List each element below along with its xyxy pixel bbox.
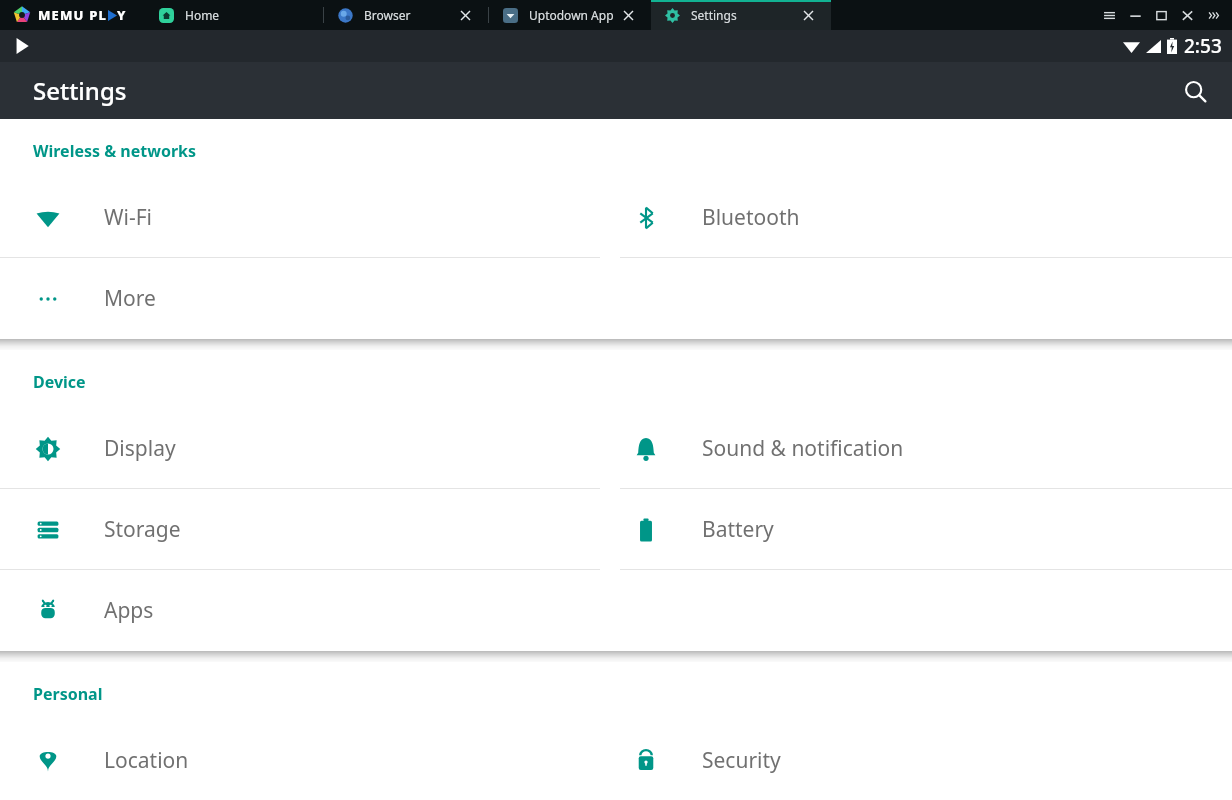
button[interactable]: Menu xyxy=(1096,0,1122,30)
button[interactable]: Settings xyxy=(651,0,831,30)
button[interactable]: Storage xyxy=(0,489,600,570)
staticText: Sound & notification xyxy=(702,434,904,463)
staticText: Location xyxy=(104,746,189,775)
staticText: Apps xyxy=(104,596,154,625)
staticText: Security xyxy=(702,746,781,775)
staticText: Device xyxy=(33,371,86,393)
staticText: More xyxy=(104,284,156,313)
button[interactable]: Security xyxy=(620,720,1232,800)
button[interactable]: More xyxy=(1200,0,1226,30)
button[interactable]: Close xyxy=(1174,0,1200,30)
staticText: Bluetooth xyxy=(702,203,800,232)
staticText: Browser xyxy=(364,7,454,23)
staticText: Y xyxy=(117,6,127,24)
button[interactable]: Bluetooth xyxy=(620,177,1232,258)
button[interactable]: MEMU PL xyxy=(0,0,145,30)
button[interactable]: Apps xyxy=(0,570,600,651)
button[interactable]: Sound & notification xyxy=(620,408,1232,489)
button[interactable]: Play xyxy=(12,36,32,56)
button[interactable]: Home xyxy=(145,0,323,30)
button[interactable]: Close tab xyxy=(797,4,819,26)
button[interactable]: Close tab xyxy=(617,4,639,26)
button[interactable]: Location xyxy=(0,720,600,800)
button[interactable]: Search xyxy=(1172,68,1218,114)
button[interactable]: Maximize xyxy=(1148,0,1174,30)
button[interactable]: Uptodown App Store xyxy=(489,0,651,30)
button[interactable]: Close tab xyxy=(454,4,476,26)
staticText: Wireless & networks xyxy=(33,140,197,162)
staticText: MEMU PL xyxy=(38,6,108,24)
staticText: Display xyxy=(104,434,176,463)
staticText: Home xyxy=(185,7,289,23)
button[interactable]: Display xyxy=(0,408,600,489)
button[interactable]: Wi-Fi xyxy=(0,177,600,258)
staticText: Personal xyxy=(33,683,103,705)
staticText: Wi-Fi xyxy=(104,203,153,232)
staticText: Settings xyxy=(691,7,797,23)
staticText: Battery xyxy=(702,515,774,544)
staticText: Storage xyxy=(104,515,181,544)
staticText: Uptodown App Store xyxy=(529,7,617,23)
staticText: Settings xyxy=(33,74,127,107)
button[interactable]: More xyxy=(0,258,600,339)
button[interactable]: Browser xyxy=(324,0,488,30)
button[interactable]: Minimize xyxy=(1122,0,1148,30)
staticText: 2:53 xyxy=(1184,33,1222,59)
button[interactable]: Battery xyxy=(620,489,1232,570)
